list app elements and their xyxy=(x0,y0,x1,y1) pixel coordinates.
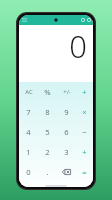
button[interactable]: +/- xyxy=(57,82,76,102)
button[interactable]: 8 xyxy=(38,102,57,122)
button[interactable]: 4 xyxy=(19,122,38,142)
button[interactable]: 6 xyxy=(57,122,76,142)
staticText: = xyxy=(82,167,87,177)
staticText: 2 xyxy=(45,147,50,157)
button[interactable]: . xyxy=(38,162,57,182)
button[interactable]: 0 xyxy=(19,162,38,182)
staticText: 6 xyxy=(64,127,69,137)
staticText: 0 xyxy=(26,167,31,177)
button[interactable]: AC xyxy=(19,82,38,102)
staticText: 8 xyxy=(45,107,50,117)
staticText: − xyxy=(82,127,87,137)
staticText: AC xyxy=(25,88,33,96)
staticText: × xyxy=(82,107,87,117)
button[interactable]: = xyxy=(76,162,93,182)
staticText: + xyxy=(82,147,87,157)
button[interactable]: − xyxy=(76,122,93,142)
staticText: 0 xyxy=(69,25,87,67)
button[interactable]: + xyxy=(76,82,93,102)
button[interactable]: 2 xyxy=(38,142,57,162)
button[interactable]: 5 xyxy=(38,122,57,142)
button[interactable]: Backspace xyxy=(57,162,76,182)
staticText: % xyxy=(44,87,51,97)
button[interactable]: 1 xyxy=(19,142,38,162)
button[interactable]: 3 xyxy=(57,142,76,162)
staticText: + xyxy=(82,87,87,97)
staticText: 5 xyxy=(45,127,50,137)
button[interactable]: 7 xyxy=(19,102,38,122)
button[interactable]: % xyxy=(38,82,57,102)
button[interactable]: 9 xyxy=(57,102,76,122)
button[interactable]: × xyxy=(76,102,93,122)
staticText: 4 xyxy=(26,127,31,137)
staticText: 7 xyxy=(26,107,31,117)
staticText: . xyxy=(46,167,49,177)
staticText: 1 xyxy=(26,147,31,157)
staticText: 3 xyxy=(64,147,69,157)
staticText: 9 xyxy=(64,107,69,117)
button[interactable]: + xyxy=(76,142,93,162)
staticText: +/- xyxy=(63,88,71,96)
